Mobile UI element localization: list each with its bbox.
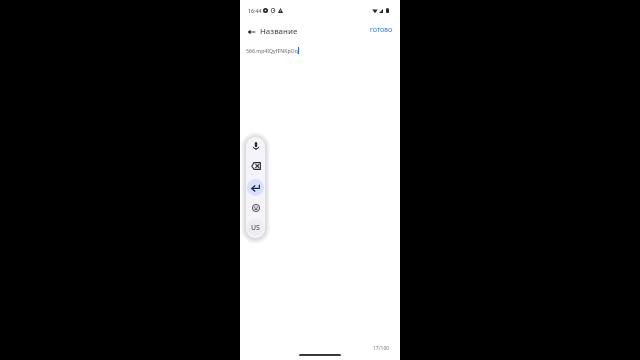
staticText: US [251,223,260,232]
button[interactable]: Emoji [247,199,264,216]
button[interactable]: Enter [247,179,264,196]
staticText: Название [260,26,298,37]
staticText: 17/100 [373,345,390,352]
staticText: 16:44 [248,7,262,14]
button[interactable]: Switch language [247,219,264,236]
button[interactable]: Voice input [247,137,264,154]
staticText: ГОТОВО [370,26,393,34]
staticText: 566.mp4IQyfFNKpOq [246,47,298,54]
button[interactable]: Backspace [247,157,264,174]
button[interactable]: ГОТОВО [368,24,395,36]
button[interactable]: Back [244,24,259,39]
